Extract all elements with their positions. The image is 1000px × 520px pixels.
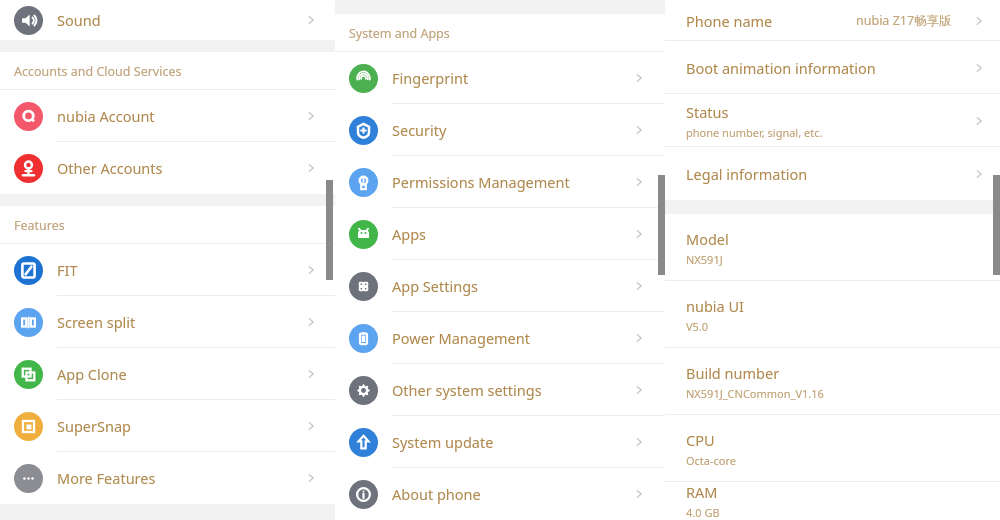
staticText: Other Accounts	[57, 158, 163, 178]
button[interactable]: FIT	[0, 244, 335, 296]
button[interactable]: More Features	[0, 452, 335, 504]
staticText: NX591J	[686, 252, 723, 267]
button[interactable]: System update	[335, 416, 665, 468]
staticText: FIT	[57, 260, 78, 280]
staticText: Model	[686, 229, 729, 249]
staticText: Features	[14, 217, 65, 234]
staticText: Security	[392, 120, 447, 140]
button[interactable]: Phone name	[665, 0, 1000, 41]
staticText: NX591J_CNCommon_V1.16	[686, 386, 824, 401]
staticText: More Features	[57, 468, 156, 488]
staticText: phone number, signal, etc.	[686, 125, 823, 140]
staticText: nubia UI	[686, 296, 744, 316]
button[interactable]: Boot animation information	[665, 41, 1000, 94]
button[interactable]: Build number	[665, 348, 1000, 415]
staticText: Accounts and Cloud Services	[14, 63, 182, 80]
staticText: App Clone	[57, 364, 127, 384]
button[interactable]: nubia UI	[665, 281, 1000, 348]
button[interactable]: RAM	[665, 482, 1000, 520]
staticText: Octa-core	[686, 453, 737, 468]
staticText: Status	[686, 102, 729, 122]
staticText: Screen split	[57, 312, 136, 332]
button[interactable]: Apps	[335, 208, 665, 260]
button[interactable]: Security	[335, 104, 665, 156]
button[interactable]: Legal information	[665, 147, 1000, 200]
button[interactable]: App Clone	[0, 348, 335, 400]
staticText: System and Apps	[349, 25, 450, 42]
button[interactable]: Model	[665, 214, 1000, 281]
staticText: App Settings	[392, 276, 479, 296]
button[interactable]: nubia Account	[0, 90, 335, 142]
button[interactable]: Screen split	[0, 296, 335, 348]
button[interactable]: Fingerprint	[335, 52, 665, 104]
staticText: Build number	[686, 363, 780, 383]
button[interactable]: Other Accounts	[0, 142, 335, 194]
button[interactable]: Other system settings	[335, 364, 665, 416]
staticText: 4.0 GB	[686, 505, 720, 520]
button[interactable]: Permissions Management	[335, 156, 665, 208]
button[interactable]: About phone	[335, 468, 665, 520]
staticText: Legal information	[686, 164, 808, 184]
staticText: Other system settings	[392, 380, 542, 400]
staticText: Fingerprint	[392, 68, 469, 88]
staticText: SuperSnap	[57, 416, 131, 436]
staticText: V5.0	[686, 319, 709, 334]
staticText: Boot animation information	[686, 58, 876, 78]
button[interactable]: Status	[665, 94, 1000, 147]
staticText: Power Management	[392, 328, 530, 348]
staticText: nubia Account	[57, 106, 155, 126]
staticText: Apps	[392, 224, 427, 244]
staticText: Sound	[57, 10, 101, 30]
button[interactable]: CPU	[665, 415, 1000, 482]
staticText: About phone	[392, 484, 481, 504]
button[interactable]: SuperSnap	[0, 400, 335, 452]
button[interactable]: Power Management	[335, 312, 665, 364]
staticText: System update	[392, 432, 494, 452]
staticText: Permissions Management	[392, 172, 570, 192]
staticText: RAM	[686, 482, 718, 502]
staticText: nubia Z17畅享版	[856, 12, 952, 29]
staticText: CPU	[686, 430, 715, 450]
button[interactable]: App Settings	[335, 260, 665, 312]
staticText: Phone name	[686, 11, 773, 31]
